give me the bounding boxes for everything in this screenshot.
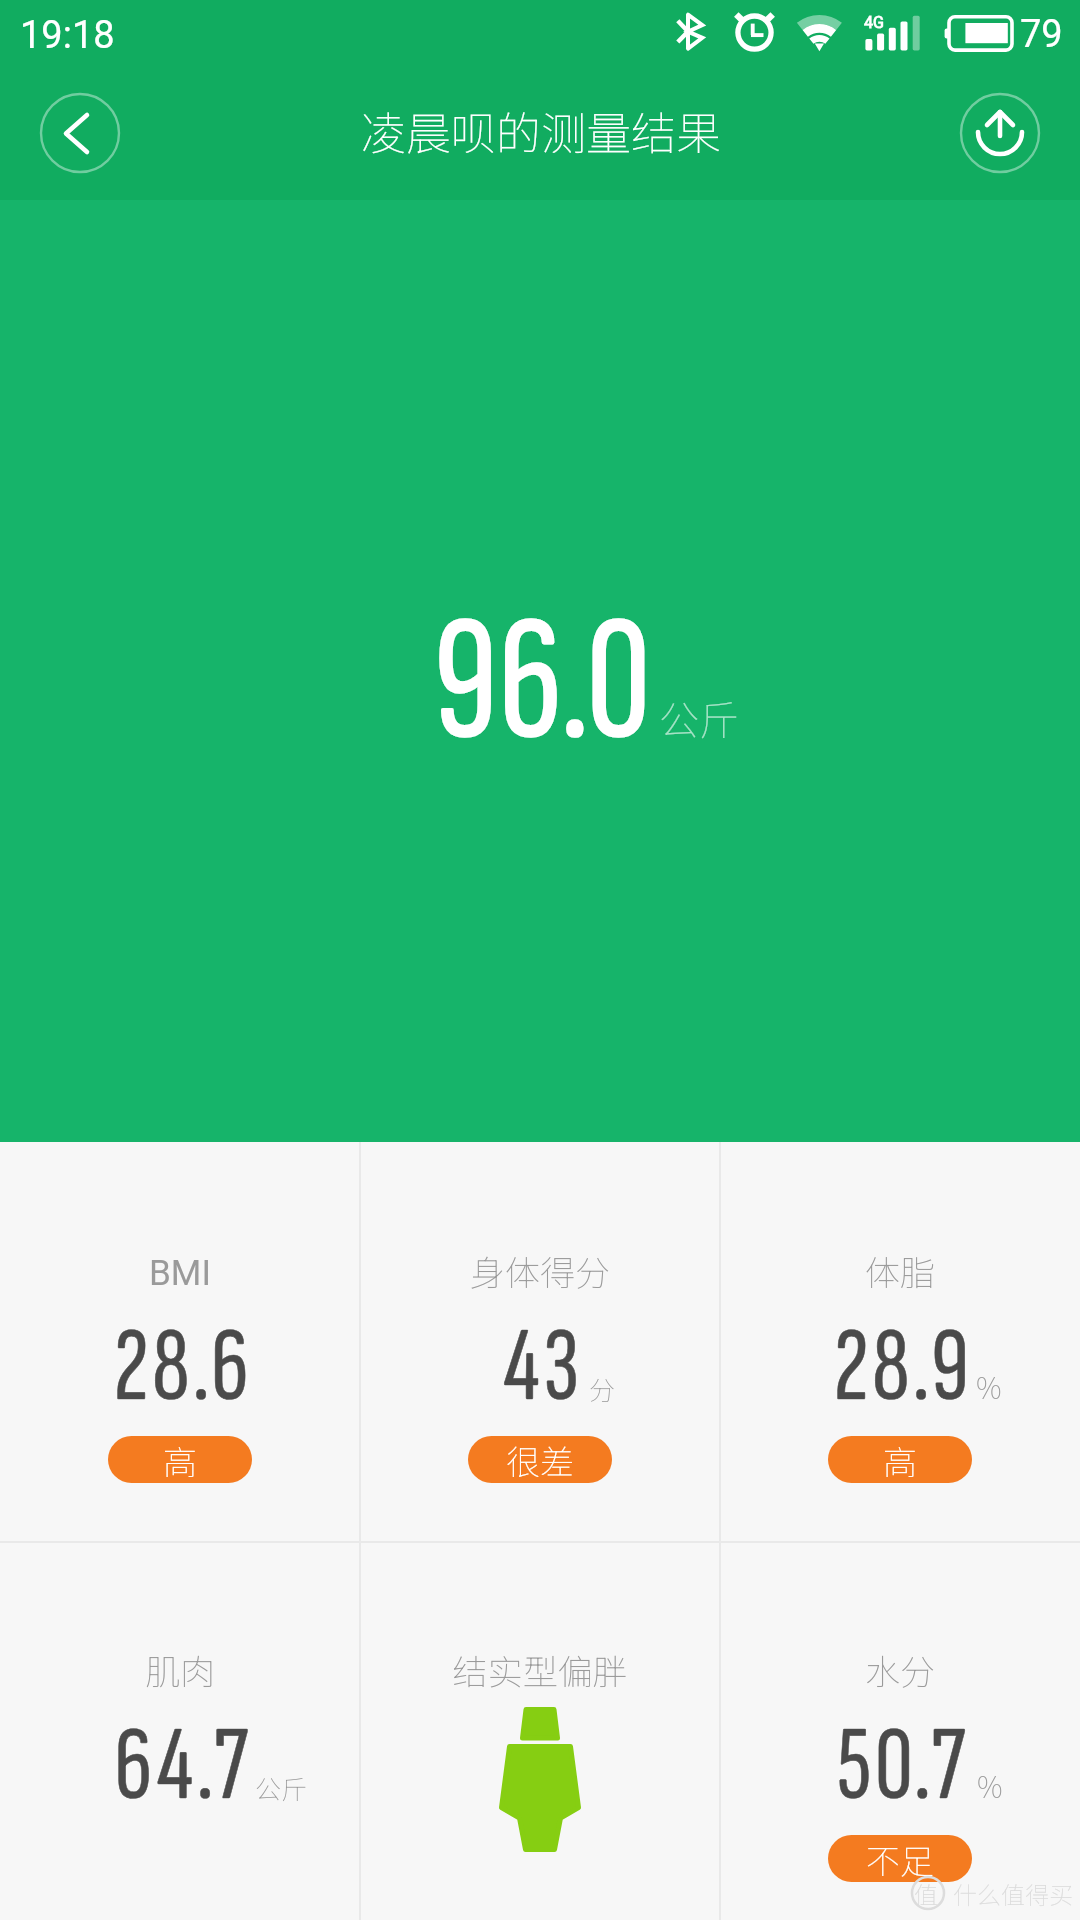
button[interactable]: 不足 [828,1835,972,1882]
staticText: 高 [883,1436,917,1483]
staticText: 96.0 [3,577,1080,789]
button[interactable]: Share [960,93,1040,173]
button[interactable]: 高 [108,1436,252,1483]
staticText: 96.0 [3,577,1080,789]
button[interactable]: Back [40,93,120,173]
staticText: 身体得分 [360,1245,720,1296]
staticText: 什么值得买 [953,1876,1073,1911]
staticText: 50.7 [723,1703,1080,1830]
staticText: 19:18 [20,13,115,58]
staticText: 分 [589,1370,616,1408]
staticText: 28.6 [3,1304,363,1431]
staticText: % [977,1764,1003,1806]
staticText: 28.9 [723,1304,1080,1431]
staticText: 很差 [506,1436,574,1483]
staticText: 肌肉 [0,1644,360,1695]
staticText: 43 [363,1304,723,1431]
button[interactable]: 高 [828,1436,972,1483]
button[interactable]: 很差 [468,1436,612,1483]
staticText: 公斤 [255,1769,308,1807]
staticText: 结实型偏胖 [360,1644,720,1695]
staticText: 64.7 [3,1703,363,1830]
staticText: 64.7 [3,1703,363,1830]
staticText: 值 [914,1876,938,1911]
staticText: 高 [163,1436,197,1483]
staticText: 体脂 [720,1245,1080,1296]
button[interactable] [0,1541,360,1920]
staticText: 28.6 [3,1304,363,1431]
staticText: 79 [1020,12,1063,57]
staticText: 43 [363,1304,723,1431]
staticText: BMI [0,1253,360,1294]
staticText: 凌晨呗的测量结果 [1,98,1080,163]
staticText: 水分 [720,1644,1080,1695]
button[interactable] [720,1142,1080,1541]
button[interactable] [360,1541,720,1920]
staticText: 不足 [866,1835,934,1882]
staticText: 公斤 [659,689,739,747]
button[interactable] [360,1142,720,1541]
button[interactable] [0,1142,360,1541]
staticText: % [976,1365,1002,1407]
staticText: 4G [864,13,884,32]
staticText: 50.7 [723,1703,1080,1830]
staticText: 28.9 [723,1304,1080,1431]
button[interactable] [720,1541,1080,1920]
